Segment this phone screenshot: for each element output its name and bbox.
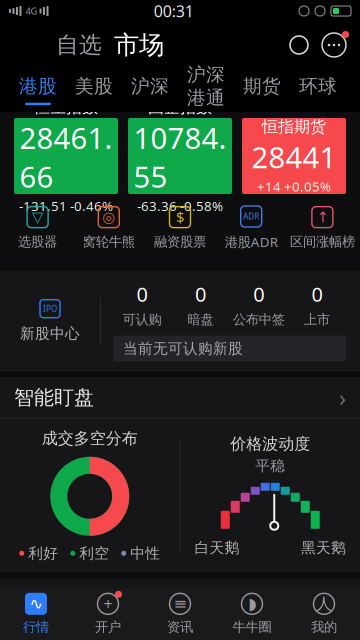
staticText: 环球 bbox=[299, 75, 337, 98]
staticText: 港股 bbox=[19, 75, 57, 98]
staticText: 可认购 bbox=[123, 311, 162, 328]
button[interactable]: ▽ bbox=[2, 203, 73, 254]
staticText: -63.36 -0.58% bbox=[137, 197, 223, 215]
staticText: 富途热度榜 bbox=[14, 586, 114, 611]
button[interactable]: 0 bbox=[171, 281, 229, 328]
staticText: › bbox=[339, 383, 346, 413]
button[interactable]: 恒生指数 bbox=[14, 118, 118, 194]
staticText: 人 bbox=[316, 594, 332, 614]
staticText: 恒指期货 bbox=[262, 117, 326, 136]
staticText: 自选 bbox=[56, 31, 102, 59]
button[interactable]: 市场 bbox=[108, 21, 170, 68]
staticText: 港股ADR bbox=[225, 233, 278, 251]
button[interactable]: ADR bbox=[216, 202, 287, 255]
staticText: 利好 bbox=[28, 544, 58, 562]
staticText: 区间涨幅榜 bbox=[290, 234, 355, 250]
button[interactable]: 沪深港通 bbox=[178, 68, 234, 112]
staticText: + bbox=[103, 593, 112, 614]
staticText: 10784.55 bbox=[133, 118, 226, 196]
staticText: 利空 bbox=[79, 544, 109, 562]
staticText: 沪深 bbox=[131, 75, 169, 98]
staticText: 当前无可认购新股 bbox=[123, 340, 243, 358]
staticText: $ bbox=[176, 207, 184, 227]
button[interactable]: 期货 bbox=[234, 68, 290, 112]
button[interactable]: ∿ bbox=[0, 588, 72, 640]
button[interactable]: 美股 bbox=[66, 68, 122, 112]
staticText: 28461.66 bbox=[19, 118, 112, 196]
staticText: 恒生指数 bbox=[34, 97, 98, 117]
button[interactable]: 环球 bbox=[290, 68, 346, 112]
button[interactable]: 恒指期货 bbox=[242, 118, 346, 194]
button[interactable]: ◎ bbox=[73, 203, 144, 254]
staticText: 价格波动度 bbox=[230, 434, 310, 454]
staticText: ≡ bbox=[173, 595, 186, 613]
staticText: 暗盘 bbox=[187, 311, 213, 328]
button[interactable]: ↑ bbox=[287, 203, 358, 254]
staticText: IPO bbox=[43, 303, 57, 314]
staticText: 0 bbox=[195, 281, 206, 307]
button[interactable]: $ bbox=[144, 203, 216, 254]
staticText: 融资股票 bbox=[154, 234, 206, 250]
staticText: 期货 bbox=[243, 75, 281, 98]
staticText: 0 bbox=[253, 281, 264, 307]
staticText: 上市 bbox=[304, 311, 330, 328]
staticText: 0 bbox=[311, 281, 322, 307]
staticText: 中性 bbox=[130, 544, 160, 562]
staticText: 平稳 bbox=[255, 457, 285, 475]
button[interactable]: 0 bbox=[229, 281, 288, 328]
button[interactable]: 0 bbox=[113, 281, 171, 328]
staticText: +14 +0.05% bbox=[257, 177, 331, 195]
staticText: 选股器 bbox=[18, 234, 57, 250]
button[interactable]: 当前无可认购新股 bbox=[113, 336, 346, 362]
staticText: 新股中心 bbox=[20, 325, 80, 343]
button[interactable]: 国企指数 bbox=[128, 118, 232, 194]
staticText: 4G bbox=[25, 5, 37, 17]
button[interactable]: IPO bbox=[0, 291, 100, 351]
button[interactable]: 港股 bbox=[10, 68, 66, 112]
staticText: 牛牛圈 bbox=[232, 619, 271, 635]
staticText: 窝轮牛熊 bbox=[83, 234, 135, 250]
button[interactable]: + bbox=[72, 588, 144, 640]
button[interactable]: 沪深 bbox=[122, 68, 178, 112]
staticText: 市场 bbox=[114, 29, 164, 60]
staticText: 我的 bbox=[311, 619, 337, 635]
staticText: 成交多空分布 bbox=[42, 429, 138, 448]
staticText: ↑ bbox=[316, 209, 328, 225]
button[interactable]: ◗ bbox=[216, 588, 288, 640]
staticText: 开户 bbox=[95, 619, 121, 635]
button[interactable]: 人 bbox=[288, 588, 360, 640]
staticText: 美股 bbox=[75, 75, 113, 98]
staticText: 行情 bbox=[23, 619, 49, 635]
button[interactable]: 智能盯盘 bbox=[0, 378, 360, 418]
staticText: 28441 bbox=[251, 137, 336, 176]
button[interactable]: 搜索 bbox=[282, 28, 316, 62]
staticText: 白天鹅 bbox=[194, 539, 239, 557]
staticText: 00:31 bbox=[154, 0, 194, 22]
button[interactable]: ≡ bbox=[144, 588, 216, 640]
staticText: 黑天鹅 bbox=[301, 539, 346, 557]
staticText: ◎ bbox=[102, 209, 115, 225]
button[interactable]: 自选 bbox=[50, 23, 108, 67]
staticText: -131.51 -0.46% bbox=[19, 197, 113, 215]
staticText: ∿ bbox=[29, 595, 42, 613]
staticText: 公布中签 bbox=[233, 311, 285, 328]
staticText: 智能盯盘 bbox=[14, 385, 94, 410]
button[interactable]: 富途热度榜 bbox=[0, 578, 360, 618]
staticText: 0 bbox=[137, 281, 148, 307]
staticText: ◗ bbox=[248, 595, 256, 613]
button[interactable]: 0 bbox=[288, 281, 346, 328]
staticText: 资讯 bbox=[167, 619, 193, 635]
staticText: 国企指数 bbox=[148, 97, 212, 117]
button[interactable]: 更多 bbox=[316, 27, 352, 63]
staticText: ADR bbox=[243, 211, 259, 222]
staticText: 沪深港通 bbox=[187, 63, 225, 109]
staticText: ▽ bbox=[32, 209, 43, 225]
